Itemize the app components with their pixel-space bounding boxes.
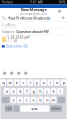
staticText: 9:41 AM	[30, 0, 42, 4]
staticText: Outlook for iOS	[6, 45, 27, 48]
staticText: h	[39, 88, 41, 94]
button[interactable]: Add recipient	[61, 16, 65, 20]
staticText: x	[19, 97, 21, 102]
staticText: c	[26, 97, 28, 102]
staticText: return	[52, 107, 61, 110]
button[interactable]: Compose option	[22, 69, 29, 78]
staticText: 123	[6, 107, 12, 110]
staticText: Question about HW	[16, 29, 49, 34]
staticText: Verizon	[2, 0, 13, 4]
staticText: u	[42, 80, 44, 85]
staticText: yourname@uab.edu	[20, 12, 47, 16]
staticText: q	[2, 80, 4, 85]
button[interactable]: Send	[56, 8, 64, 14]
staticText: f	[26, 88, 27, 94]
staticText: New Message	[20, 7, 46, 12]
staticText: o	[56, 80, 58, 85]
button[interactable]: Outlook for iOS	[6, 45, 27, 48]
staticText: v	[32, 97, 34, 102]
staticText: 5.28.2020.pdf	[7, 36, 29, 39]
button[interactable]: Compose option	[15, 69, 22, 78]
staticText: s	[12, 88, 14, 94]
staticText: b	[39, 97, 41, 102]
staticText: n	[46, 97, 48, 102]
staticText: e	[16, 80, 18, 85]
staticText: r	[22, 80, 24, 85]
staticText: 84%	[59, 0, 65, 4]
staticText: w	[8, 80, 11, 85]
staticText: Cc/Bcc:	[2, 22, 16, 27]
staticText: space	[31, 107, 38, 110]
staticText: z	[12, 97, 14, 102]
staticText: a	[6, 88, 8, 94]
staticText: j	[46, 88, 47, 94]
staticText: YourProfessor@uab.edu	[8, 15, 50, 20]
staticText: k	[53, 88, 55, 94]
staticText: i	[50, 80, 51, 85]
staticText: t	[30, 80, 31, 85]
staticText: g	[32, 88, 34, 94]
staticText: d	[19, 88, 21, 94]
button[interactable]: 5.28.2020.pdf	[0, 35, 67, 44]
staticText: To:	[2, 15, 7, 20]
button[interactable]: Compose option	[1, 69, 8, 78]
staticText: Subject:	[2, 29, 15, 34]
staticText: l	[60, 88, 61, 94]
button[interactable]: Compose option	[8, 69, 15, 78]
staticText: m	[52, 97, 56, 102]
staticText: 1.1 MB	[7, 39, 17, 43]
staticText: p	[63, 80, 65, 85]
staticText: y	[36, 80, 38, 85]
